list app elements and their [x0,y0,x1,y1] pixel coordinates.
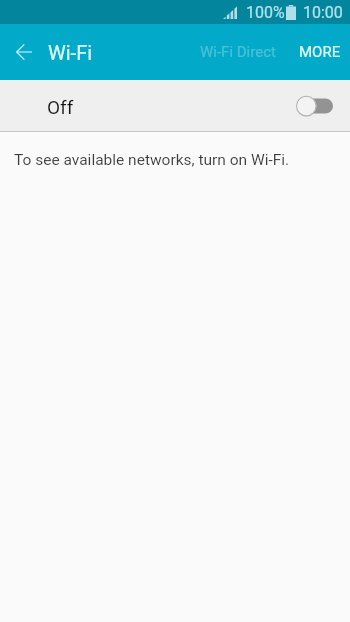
staticText: Wi-Fi [48,41,93,64]
staticText: MORE [299,43,341,61]
staticText: 100% [246,3,285,22]
staticText: Wi-Fi Direct [200,43,276,61]
button[interactable]: Wi-Fi on/off [297,88,333,124]
button[interactable]: Navigate up [0,24,48,80]
staticText: To see available networks, turn on Wi-Fi… [14,151,290,169]
staticText: 10:00 [303,3,343,22]
staticText: Off [47,96,74,118]
button[interactable]: MORE [293,33,347,71]
button[interactable]: Wi-Fi Direct [194,33,282,71]
button[interactable]: Off [0,80,350,131]
